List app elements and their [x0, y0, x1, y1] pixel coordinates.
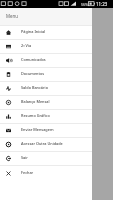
staticText: Balanço Mensal	[21, 99, 50, 104]
button[interactable]: Documentos	[0, 68, 92, 82]
button[interactable]: 2ª Via	[0, 40, 92, 54]
button[interactable]: Fechar	[0, 166, 92, 180]
button[interactable]: Resumo Gráfico	[0, 110, 92, 124]
button[interactable]: Enviar Mensagem	[0, 124, 92, 138]
staticText: 2ª Via	[21, 43, 32, 48]
staticText: Documentos	[21, 71, 45, 76]
button[interactable]: Balanço Mensal	[0, 96, 92, 110]
staticText: Acessar Outra Unidade	[21, 141, 63, 146]
button[interactable]: Página Inicial	[0, 26, 92, 40]
staticText: Fechar	[21, 170, 34, 175]
button[interactable]: Comunicados	[0, 54, 92, 68]
staticText: Página Inicial	[21, 29, 46, 34]
button[interactable]: Saldo Bancário	[0, 82, 92, 96]
staticText: 11:23	[96, 1, 108, 7]
staticText: 56%	[81, 2, 89, 7]
staticText: Saldo Bancário	[21, 85, 48, 90]
button[interactable]: Sair	[0, 152, 92, 166]
button[interactable]: Acessar Outra Unidade	[0, 138, 92, 152]
staticText: Sair	[21, 155, 28, 160]
staticText: Menu	[6, 13, 18, 19]
staticText: Comunicados	[21, 57, 46, 62]
staticText: Resumo Gráfico	[21, 113, 50, 118]
staticText: Enviar Mensagem	[21, 127, 54, 132]
